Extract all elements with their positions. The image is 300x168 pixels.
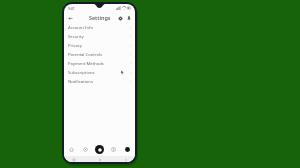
staticText: Settings <box>89 14 111 21</box>
button[interactable]: Subscriptions <box>64 68 135 77</box>
button[interactable]: Explore <box>81 145 90 154</box>
button[interactable]: Back <box>123 157 128 162</box>
button[interactable]: Recents <box>71 157 76 162</box>
button[interactable]: Security <box>64 32 135 41</box>
button[interactable]: Library <box>109 145 118 154</box>
button[interactable]: Account <box>125 14 133 22</box>
staticText: 9:41 <box>68 6 75 11</box>
staticText: Security <box>68 34 84 40</box>
staticText: Account Info <box>68 25 93 31</box>
button[interactable]: Home <box>97 157 102 162</box>
button[interactable]: Payment Methods <box>64 59 135 68</box>
staticText: Payment Methods <box>68 61 104 67</box>
button[interactable]: Privacy <box>64 41 135 50</box>
staticText: Subscriptions <box>68 70 95 76</box>
button[interactable]: Capture <box>95 145 104 154</box>
button[interactable]: Account Info <box>64 23 135 32</box>
staticText: Notifications <box>68 79 93 85</box>
staticText: Privacy <box>68 43 82 49</box>
button[interactable]: Home <box>67 145 76 154</box>
button[interactable]: Profile <box>123 145 132 154</box>
button[interactable]: Back <box>66 14 74 22</box>
button[interactable]: Parental Controls <box>64 50 135 59</box>
button[interactable]: Notifications <box>64 77 135 86</box>
staticText: Parental Controls <box>68 52 103 58</box>
button[interactable]: Settings <box>116 14 124 22</box>
